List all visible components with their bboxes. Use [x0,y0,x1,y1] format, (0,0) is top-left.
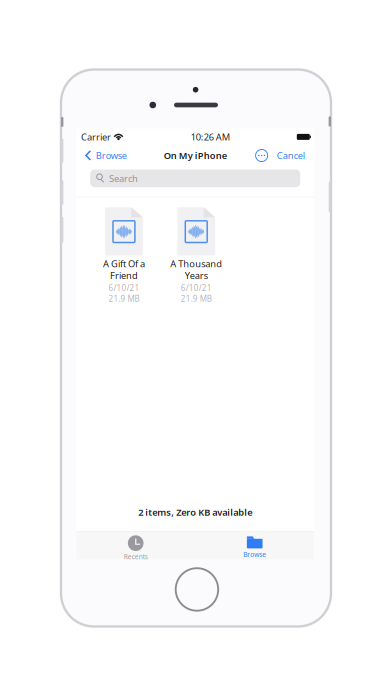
staticText: Browse [96,149,127,162]
button[interactable]: Search [90,169,300,187]
staticText: Browse [243,550,266,559]
button[interactable]: A Gift Of a [88,207,160,303]
staticText: Search [109,172,138,185]
staticText: 21.9 MB [181,293,212,304]
staticText: Recents [124,552,148,561]
button[interactable]: Browse [76,141,133,169]
staticText: A Gift Of a [103,257,145,270]
staticText: 10:26 AM [191,131,230,143]
staticText: A Thousand [170,257,222,270]
staticText: 2 items, Zero KB available [138,506,252,518]
staticText: Friend [110,269,138,281]
staticText: Years [185,269,208,281]
staticText: 6/10/21 [181,282,212,293]
staticText: On My iPhone [164,149,227,162]
button[interactable]: Recents [76,531,195,559]
staticText: Cancel [277,149,305,162]
staticText: 6/10/21 [108,282,139,293]
staticText: 21.9 MB [108,293,139,304]
staticText: Carrier [81,131,111,143]
button[interactable]: Cancel [271,141,314,169]
button[interactable]: More [253,141,271,169]
button[interactable]: Browse [195,531,314,559]
button[interactable]: A Thousand [160,207,232,303]
